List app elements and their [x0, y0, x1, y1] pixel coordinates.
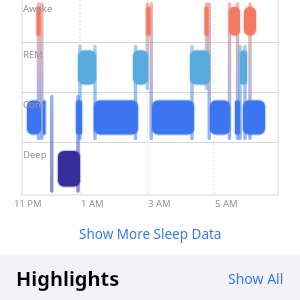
button[interactable]: Show All — [228, 269, 284, 288]
staticText: Show More Sleep Data — [79, 225, 222, 243]
staticText: Highlights — [16, 265, 228, 292]
staticText: Deep — [23, 148, 47, 161]
staticText: Core — [23, 98, 44, 111]
staticText: REM — [23, 48, 43, 61]
button[interactable]: Show More Sleep Data — [0, 212, 300, 255]
staticText: Awake — [23, 2, 53, 15]
staticText: 5 AM — [215, 197, 238, 210]
staticText: 3 AM — [148, 197, 171, 210]
staticText: Show All — [228, 269, 284, 288]
staticText: 1 AM — [81, 197, 104, 210]
staticText: 11 PM — [14, 197, 42, 210]
